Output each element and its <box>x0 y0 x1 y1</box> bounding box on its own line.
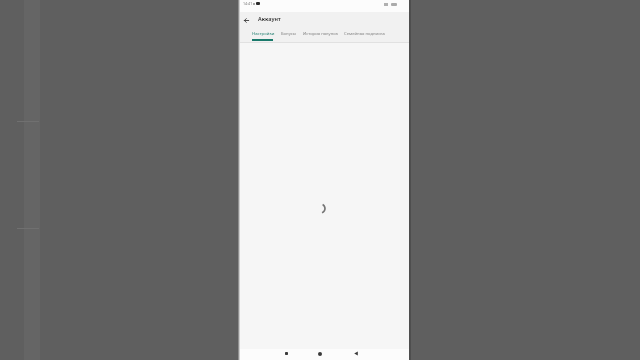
button[interactable] <box>242 16 251 25</box>
button[interactable]: История покупок <box>303 31 338 37</box>
staticText: 14:41 <box>243 1 253 6</box>
button[interactable] <box>283 350 291 358</box>
button[interactable]: Настройки <box>252 31 275 37</box>
button[interactable]: Семейная подписка <box>344 31 385 37</box>
button[interactable] <box>352 350 360 358</box>
button[interactable] <box>316 350 324 358</box>
button[interactable]: Бонусы <box>281 31 296 37</box>
staticText: Аккаунт <box>258 15 281 22</box>
